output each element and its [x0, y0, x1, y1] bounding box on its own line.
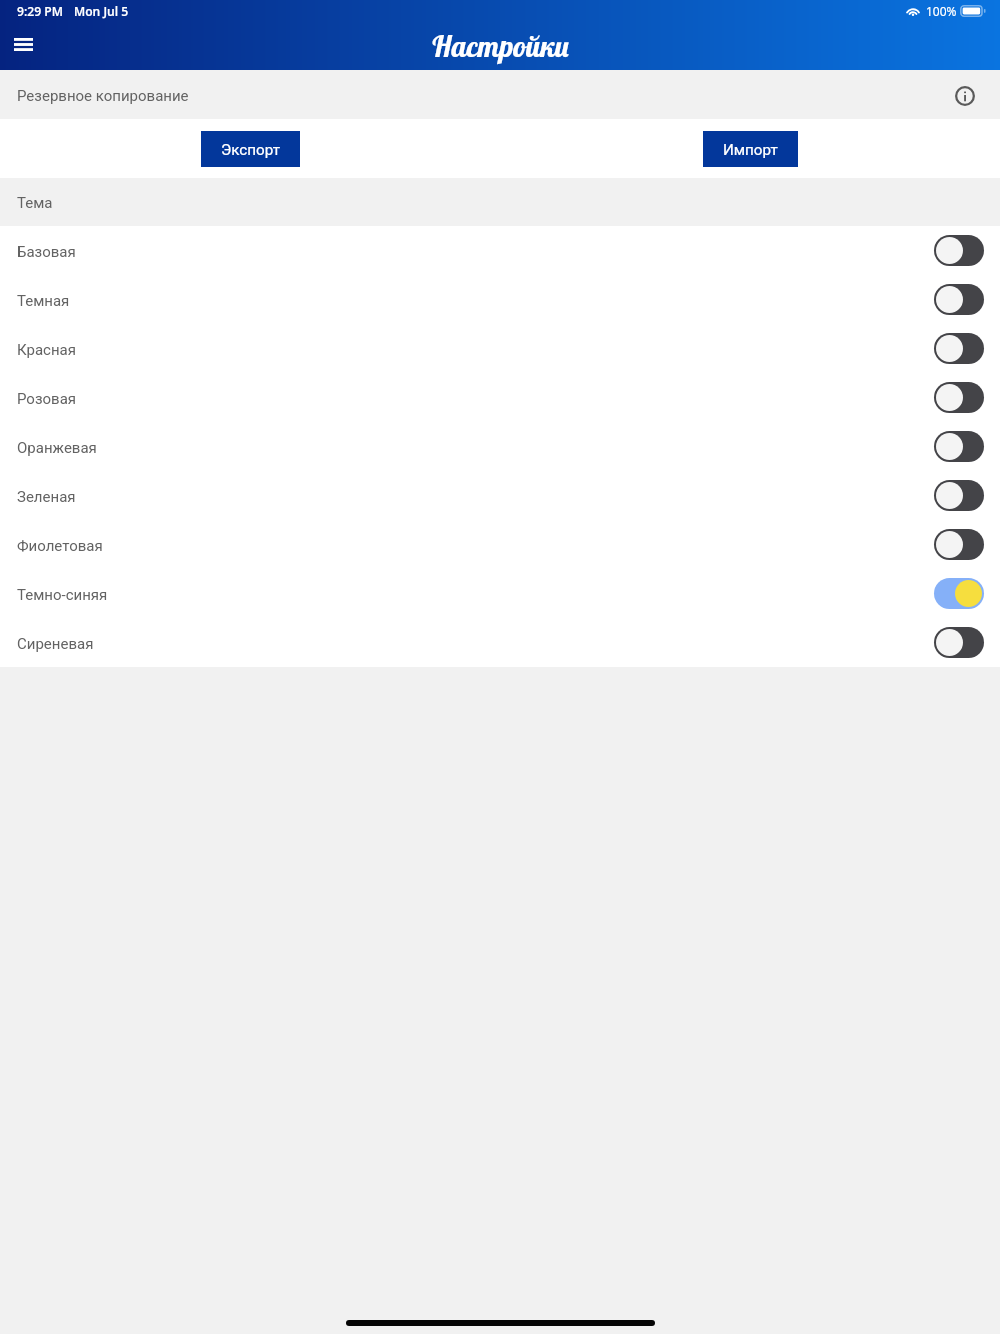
staticText: Сиреневая: [17, 635, 94, 653]
button[interactable]: Красная: [0, 324, 1000, 373]
button[interactable]: Импорт: [703, 131, 798, 167]
staticText: Mon Jul 5: [74, 3, 129, 20]
staticText: Красная: [17, 341, 76, 359]
staticText: Экспорт: [221, 141, 280, 159]
button[interactable]: Disabled: [934, 333, 984, 364]
button[interactable]: Экспорт: [201, 131, 300, 167]
staticText: 9:29 PM: [17, 3, 63, 20]
staticText: Импорт: [723, 141, 778, 159]
button[interactable]: Базовая: [0, 226, 1000, 275]
staticText: Резервное копирование: [17, 87, 189, 105]
staticText: Базовая: [17, 243, 76, 261]
staticText: Зеленая: [17, 488, 76, 506]
button[interactable]: Disabled: [934, 529, 984, 560]
staticText: 100%: [926, 3, 957, 19]
staticText: Темно-синяя: [17, 586, 108, 604]
staticText: Темная: [17, 292, 70, 310]
button[interactable]: Розовая: [0, 373, 1000, 422]
button[interactable]: Disabled: [934, 284, 984, 315]
button[interactable]: Оранжевая: [0, 422, 1000, 471]
button[interactable]: Зеленая: [0, 471, 1000, 520]
button[interactable]: Information: [953, 84, 977, 108]
button[interactable]: Disabled: [934, 382, 984, 413]
button[interactable]: Disabled: [934, 627, 984, 658]
staticText: Настройки: [432, 28, 569, 64]
button[interactable]: Enabled: [934, 578, 984, 609]
staticText: Розовая: [17, 390, 77, 408]
button[interactable]: Сиреневая: [0, 618, 1000, 667]
staticText: Фиолетовая: [17, 537, 103, 555]
button[interactable]: Open navigation menu: [9, 30, 37, 58]
button[interactable]: Disabled: [934, 431, 984, 462]
staticText: Оранжевая: [17, 439, 97, 457]
staticText: Тема: [17, 194, 53, 212]
button[interactable]: Disabled: [934, 480, 984, 511]
button[interactable]: Disabled: [934, 235, 984, 266]
button[interactable]: Темно-синяя: [0, 569, 1000, 618]
button[interactable]: Фиолетовая: [0, 520, 1000, 569]
button[interactable]: Темная: [0, 275, 1000, 324]
